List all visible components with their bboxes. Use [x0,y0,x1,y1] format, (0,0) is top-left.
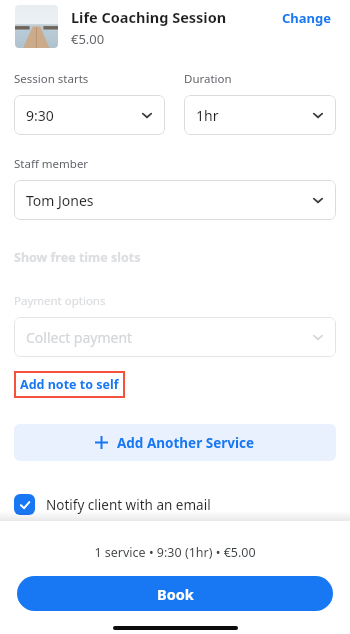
staticText: Add Another Service [117,434,255,452]
button[interactable]: Add note to self [14,371,125,398]
staticText: 1 service • 9:30 (1hr) • €5.00 [94,544,256,561]
button[interactable]: Change [278,5,336,31]
button[interactable]: Tom Jones [14,180,336,220]
staticText: €5.00 [71,30,105,48]
button[interactable]: Show free time slots [14,249,141,266]
staticText: Payment options [14,293,106,309]
button[interactable]: Book [17,576,333,611]
staticText: Session starts [14,71,89,87]
staticText: Show free time slots [14,249,141,266]
button[interactable]: 9:30 [14,95,165,135]
button[interactable]: Notify client with an email [14,494,211,515]
staticText: Notify client with an email [46,496,211,514]
button[interactable]: 1hr [184,95,336,135]
button[interactable]: Add Another Service [14,424,336,461]
staticText: Life Coaching Session [71,7,227,27]
staticText: Duration [184,71,232,87]
button: Collect payment [14,317,336,357]
staticText: Book [157,584,194,604]
staticText: Tom Jones [26,191,311,210]
staticText: 9:30 [26,106,140,125]
other: Home indicator [113,626,238,630]
staticText: Add note to self [20,376,119,393]
staticText: Collect payment [26,328,311,347]
staticText: Staff member [14,156,89,172]
staticText: Change [282,9,332,27]
staticText: 1hr [196,106,311,125]
